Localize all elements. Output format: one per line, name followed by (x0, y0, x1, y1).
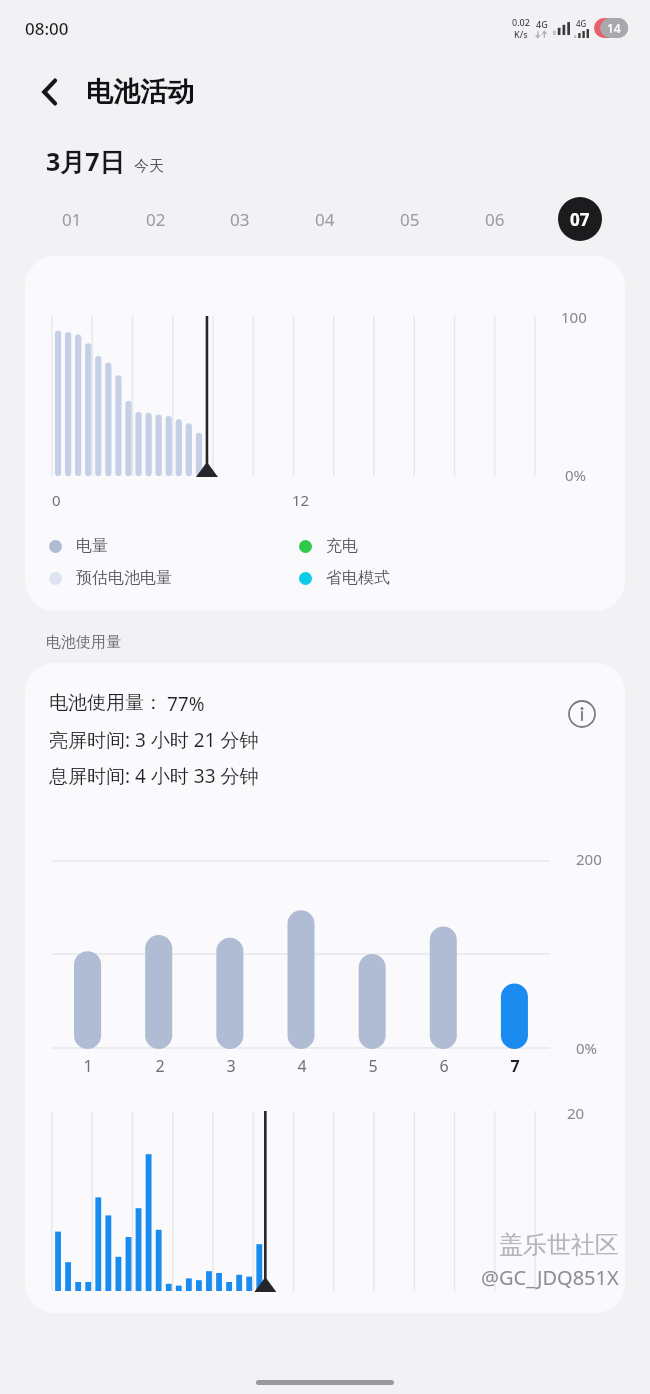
staticText: 4 (297, 1055, 307, 1077)
staticText: K/s (514, 28, 528, 40)
button[interactable]: 07 (537, 196, 622, 242)
button[interactable]: 06 (452, 196, 537, 242)
button[interactable]: 100 (25, 256, 625, 611)
staticText: 7 (510, 1055, 520, 1077)
staticText: 电池活动 (86, 75, 194, 109)
staticText: 06 (485, 208, 505, 231)
staticText: @GC_JDQ851X (481, 1264, 619, 1291)
staticText: 0.02 (512, 16, 530, 28)
staticText: 电池使用量： (49, 691, 163, 715)
staticText: 充电 (326, 536, 358, 556)
staticText: 03 (230, 208, 250, 231)
staticText: 0% (576, 1038, 598, 1058)
staticText: 14 (607, 20, 621, 36)
button[interactable]: 01 (30, 196, 114, 242)
staticText: 0% (565, 465, 587, 485)
staticText: 预估电池电量 (76, 568, 172, 588)
staticText: 亮屏时间: 3 小时 21 分钟 (49, 727, 259, 753)
staticText: 0 (52, 490, 61, 510)
staticText: 4G (536, 18, 548, 30)
staticText: 1 (83, 1055, 93, 1077)
staticText: 02 (146, 208, 166, 231)
staticText: 05 (400, 208, 420, 231)
button[interactable]: 电池使用量： (25, 663, 625, 1313)
staticText: 电量 (76, 536, 108, 556)
staticText: 省电模式 (326, 568, 390, 588)
button[interactable]: 03 (198, 196, 282, 242)
staticText: 200 (576, 849, 602, 869)
staticText: 2 (155, 1055, 165, 1077)
button[interactable]: Info (559, 691, 605, 737)
staticText: 6 (439, 1055, 449, 1077)
staticText: 3 (226, 1055, 236, 1077)
staticText: 3月7日 (46, 144, 125, 178)
staticText: 电池使用量 (46, 633, 121, 652)
button[interactable]: Back (26, 68, 74, 116)
button[interactable]: 04 (282, 196, 367, 242)
staticText: 01 (62, 208, 82, 231)
staticText: 4G (576, 18, 587, 29)
staticText: 08:00 (25, 17, 69, 40)
staticText: 07 (570, 208, 590, 231)
button[interactable]: 02 (114, 196, 198, 242)
button[interactable]: 05 (367, 196, 452, 242)
staticText: 5 (368, 1055, 378, 1077)
staticText: 今天 (134, 157, 164, 176)
staticText: 12 (292, 490, 310, 510)
staticText: 盖乐世社区 (499, 1230, 619, 1260)
staticText: 20 (567, 1103, 585, 1123)
staticText: 77% (167, 691, 205, 717)
staticText: 100 (561, 307, 587, 327)
staticText: 息屏时间: 4 小时 33 分钟 (49, 763, 259, 789)
staticText: 04 (315, 208, 335, 231)
